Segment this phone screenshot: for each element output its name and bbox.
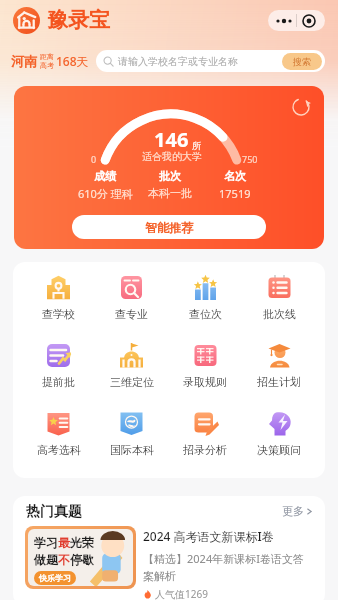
button[interactable]: 决策顾问 <box>242 410 316 458</box>
staticText: 搜索 <box>293 56 311 67</box>
staticText: 智能推荐 <box>145 220 193 235</box>
button[interactable]: 搜索 <box>282 53 322 70</box>
staticText: 最 <box>58 535 70 550</box>
staticText: 提前批 <box>42 375 75 389</box>
button[interactable]: 提前批 <box>22 342 95 390</box>
staticText: 所 <box>192 140 201 151</box>
button[interactable]: Menu <box>268 10 325 31</box>
staticText: 610分 理科 <box>78 186 133 201</box>
button[interactable]: 三维定位 <box>95 342 168 390</box>
staticText: 录取规则 <box>183 375 227 389</box>
button[interactable]: 批次线 <box>242 274 316 322</box>
staticText: 查位次 <box>189 307 222 321</box>
button[interactable]: Refresh <box>292 98 310 116</box>
button[interactable]: 学习 <box>13 526 325 600</box>
button[interactable]: 智能推荐 <box>72 215 266 239</box>
staticText: 适合我的大学 <box>112 150 232 163</box>
staticText: 0 <box>91 153 97 165</box>
staticText: 案解析 <box>143 569 176 583</box>
staticText: 成绩 <box>94 169 116 183</box>
button[interactable]: 河南 <box>11 52 89 70</box>
staticText: 高考 <box>40 61 54 70</box>
button[interactable]: 更多 <box>282 504 314 518</box>
staticText: 168天 <box>56 53 89 69</box>
staticText: 国际本科 <box>110 443 154 457</box>
button[interactable]: 请输入学校名字或专业名称 <box>96 50 325 72</box>
staticText: 决策顾问 <box>257 443 301 457</box>
button[interactable]: 查位次 <box>168 274 242 322</box>
staticText: 高考选科 <box>37 443 81 457</box>
staticText: 17519 <box>219 186 251 201</box>
staticText: 批次 <box>159 169 181 183</box>
staticText: 本科一批 <box>148 186 192 200</box>
staticText: 三维定位 <box>110 375 154 389</box>
button[interactable]: 录取规则 <box>168 342 242 390</box>
staticText: 招生计划 <box>257 375 301 389</box>
staticText: 做题 <box>34 552 58 567</box>
staticText: 更多 <box>282 504 304 518</box>
button[interactable]: Logo <box>13 7 40 34</box>
staticText: 查学校 <box>42 307 75 321</box>
staticText: 146 <box>154 126 189 153</box>
staticText: 人气值1269 <box>155 587 208 600</box>
staticText: 豫录宝 <box>47 7 110 33</box>
button[interactable]: 国际本科 <box>95 410 168 458</box>
staticText: 河南 <box>11 53 37 69</box>
staticText: 停歇 <box>70 552 94 567</box>
staticText: 750 <box>242 153 258 165</box>
staticText: 光荣 <box>70 535 94 550</box>
button[interactable]: 招录分析 <box>168 410 242 458</box>
staticText: 热门真题 <box>26 503 82 521</box>
button[interactable]: 招生计划 <box>242 342 316 390</box>
staticText: 学习 <box>34 535 58 550</box>
button[interactable]: 查学校 <box>22 274 95 322</box>
button[interactable]: 高考选科 <box>22 410 95 458</box>
staticText: 快乐学习 <box>39 573 71 583</box>
staticText: 查专业 <box>115 307 148 321</box>
staticText: 【精选】2024年新课标I卷语文答 <box>143 551 304 566</box>
staticText: 2024 高考语文新课标I卷 <box>143 528 274 544</box>
staticText: 距离 <box>40 52 54 61</box>
staticText: 名次 <box>224 169 246 183</box>
button[interactable]: 查专业 <box>95 274 168 322</box>
staticText: 不 <box>58 552 70 567</box>
staticText: 批次线 <box>263 307 296 321</box>
staticText: 请输入学校名字或专业名称 <box>118 55 238 68</box>
staticText: 招录分析 <box>183 443 227 457</box>
